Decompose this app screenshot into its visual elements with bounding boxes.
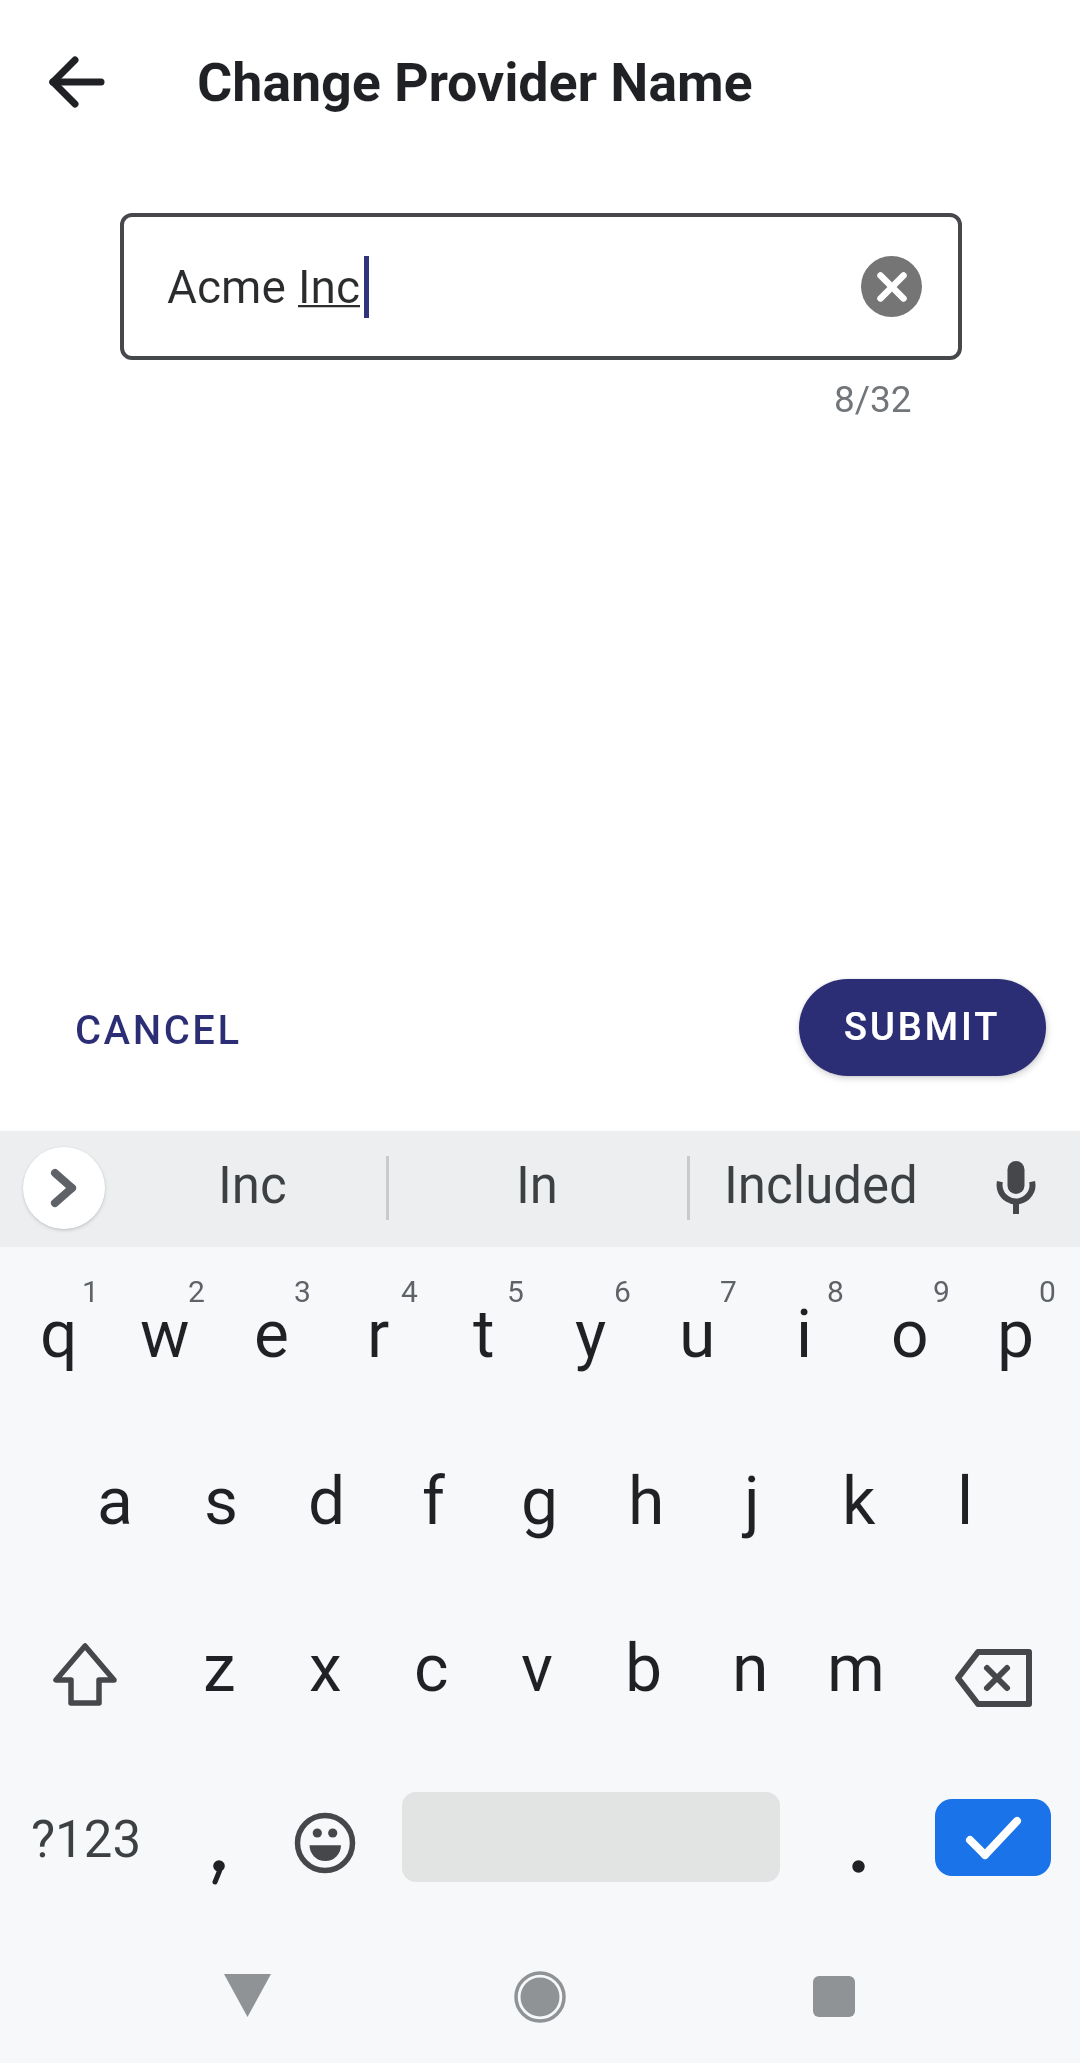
button[interactable] xyxy=(935,1799,1051,1876)
staticText: Acme xyxy=(167,260,298,314)
button[interactable]: a xyxy=(62,1421,168,1581)
staticText: 9 xyxy=(933,1274,950,1309)
staticText: h xyxy=(628,1463,665,1540)
button[interactable] xyxy=(798,1961,870,2033)
button[interactable]: t xyxy=(431,1254,537,1414)
staticText: Change Provider Name xyxy=(197,51,753,114)
staticText: i xyxy=(796,1296,813,1373)
staticText: j xyxy=(744,1463,760,1540)
staticText: Inc xyxy=(298,260,360,314)
staticText: f xyxy=(422,1463,445,1540)
staticText: 7 xyxy=(720,1274,737,1309)
button[interactable]: b xyxy=(591,1588,697,1748)
button[interactable]: k xyxy=(806,1421,912,1581)
staticText: 8/32 xyxy=(834,378,912,421)
button[interactable] xyxy=(30,1620,140,1730)
staticText: v xyxy=(521,1630,553,1707)
staticText: u xyxy=(679,1296,716,1373)
staticText: 0 xyxy=(1039,1274,1056,1309)
staticText: 4 xyxy=(401,1274,418,1309)
staticText: g xyxy=(521,1463,559,1540)
button[interactable]: p xyxy=(963,1254,1069,1414)
staticText: 3 xyxy=(294,1274,311,1309)
button[interactable] xyxy=(180,1820,260,1900)
staticText: ?123 xyxy=(31,1810,142,1870)
staticText: t xyxy=(473,1296,495,1373)
button[interactable]: g xyxy=(487,1421,593,1581)
staticText: k xyxy=(842,1463,876,1540)
button[interactable]: r xyxy=(325,1254,431,1414)
staticText: c xyxy=(414,1630,449,1707)
button[interactable] xyxy=(285,1798,365,1878)
staticText: l xyxy=(957,1463,974,1540)
button[interactable]: ?123 xyxy=(16,1800,156,1880)
button[interactable]: SUBMIT xyxy=(799,979,1046,1076)
staticText: p xyxy=(997,1296,1035,1373)
staticText: n xyxy=(732,1630,769,1707)
button[interactable] xyxy=(818,1820,898,1900)
button[interactable]: c xyxy=(378,1588,484,1748)
staticText: Inc xyxy=(218,1156,287,1216)
staticText: z xyxy=(203,1630,236,1707)
staticText: m xyxy=(827,1630,885,1707)
button[interactable]: h xyxy=(593,1421,699,1581)
button[interactable] xyxy=(212,1960,284,2032)
staticText: b xyxy=(625,1630,663,1707)
staticText: r xyxy=(367,1296,390,1373)
button[interactable]: v xyxy=(484,1588,590,1748)
button[interactable]: f xyxy=(380,1421,486,1581)
staticText: s xyxy=(204,1463,239,1540)
staticText: x xyxy=(309,1630,342,1707)
staticText: d xyxy=(308,1463,346,1540)
button[interactable]: x xyxy=(272,1588,378,1748)
button[interactable] xyxy=(940,1630,1050,1720)
staticText: In xyxy=(516,1156,559,1216)
button[interactable]: n xyxy=(697,1588,803,1748)
staticText: e xyxy=(254,1296,289,1373)
staticText: SUBMIT xyxy=(844,1005,1001,1050)
staticText: CANCEL xyxy=(75,1007,242,1054)
button[interactable]: CANCEL xyxy=(50,992,266,1068)
button[interactable] xyxy=(861,256,922,317)
button[interactable]: d xyxy=(274,1421,380,1581)
staticText: 6 xyxy=(614,1274,631,1309)
button[interactable]: Inc xyxy=(132,1151,372,1221)
button[interactable]: z xyxy=(166,1588,272,1748)
button[interactable]: y xyxy=(538,1254,644,1414)
staticText: 1 xyxy=(82,1274,99,1309)
button[interactable]: l xyxy=(912,1421,1018,1581)
button[interactable] xyxy=(504,1961,576,2033)
staticText: q xyxy=(40,1296,78,1373)
staticText: w xyxy=(140,1296,190,1373)
button[interactable]: m xyxy=(803,1588,909,1748)
staticText: a xyxy=(97,1463,133,1540)
button[interactable]: In xyxy=(417,1151,657,1221)
button[interactable] xyxy=(41,46,113,118)
button[interactable]: u xyxy=(644,1254,750,1414)
button[interactable] xyxy=(985,1155,1047,1227)
staticText: 5 xyxy=(507,1274,524,1309)
button[interactable] xyxy=(23,1147,105,1229)
button[interactable]: q xyxy=(6,1254,112,1414)
staticText: 8 xyxy=(827,1274,844,1309)
staticText: Included xyxy=(724,1156,918,1216)
button[interactable]: i xyxy=(751,1254,857,1414)
button[interactable]: Acme xyxy=(120,213,962,360)
staticText: 2 xyxy=(188,1274,205,1309)
button[interactable]: w xyxy=(112,1254,218,1414)
button[interactable]: s xyxy=(168,1421,274,1581)
staticText: o xyxy=(891,1296,929,1373)
button[interactable]: j xyxy=(699,1421,805,1581)
button[interactable]: e xyxy=(218,1254,324,1414)
button[interactable]: o xyxy=(857,1254,963,1414)
staticText: y xyxy=(575,1296,607,1373)
button[interactable]: Included xyxy=(681,1151,961,1221)
